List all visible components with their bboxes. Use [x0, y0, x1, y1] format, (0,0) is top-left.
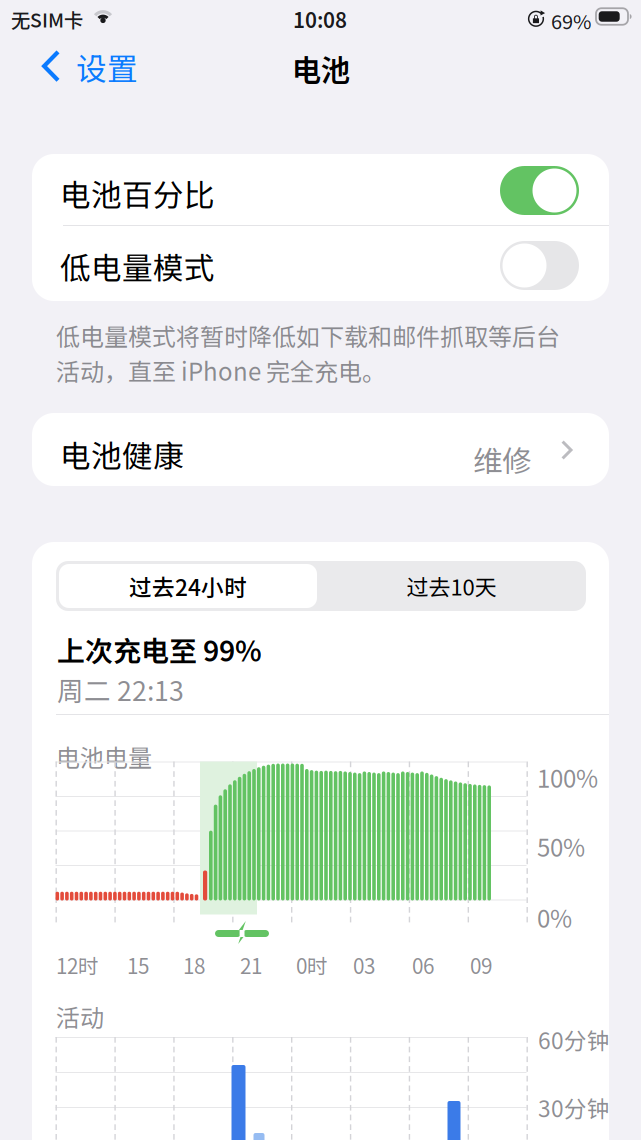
- staticText: 09: [470, 950, 492, 980]
- staticText: 03: [353, 950, 375, 980]
- staticText: 电池: [292, 47, 350, 89]
- staticText: 69%: [551, 6, 591, 35]
- button[interactable]: 电池健康: [32, 413, 609, 486]
- staticText: 过去24小时: [129, 570, 247, 602]
- staticText: 过去10天: [406, 570, 496, 602]
- staticText: 100%: [537, 760, 598, 795]
- staticText: 活动，直至 iPhone 完全充电。: [56, 353, 386, 388]
- button[interactable]: 过去24小时: [59, 564, 317, 608]
- staticText: 50%: [537, 829, 585, 864]
- staticText: 60分钟: [538, 1023, 610, 1056]
- staticText: 15: [127, 950, 149, 980]
- staticText: 无SIM卡: [11, 5, 83, 33]
- staticText: 设置: [76, 45, 138, 89]
- button[interactable]: 电池百分比: [32, 154, 609, 225]
- staticText: 上次充电至 99%: [57, 629, 262, 669]
- staticText: 电池电量: [56, 739, 152, 774]
- staticText: 周二 22:13: [57, 670, 184, 709]
- staticText: 低电量模式: [60, 244, 215, 288]
- staticText: 电池百分比: [60, 171, 215, 215]
- staticText: 低电量模式将暂时降低如下载和邮件抓取等后台: [56, 318, 560, 353]
- staticText: 0时: [296, 950, 328, 980]
- staticText: 18: [183, 950, 205, 980]
- button[interactable]: 设置: [21, 47, 125, 87]
- staticText: 维修: [473, 438, 531, 480]
- staticText: 30分钟: [538, 1091, 610, 1124]
- staticText: 电池健康: [60, 432, 184, 476]
- staticText: 活动: [56, 999, 104, 1034]
- staticText: 0%: [537, 900, 572, 935]
- staticText: 21: [240, 950, 262, 980]
- button[interactable]: 过去10天: [320, 564, 583, 608]
- button[interactable]: 低电量模式: [32, 226, 609, 301]
- staticText: 10:08: [293, 4, 347, 34]
- staticText: 06: [412, 950, 434, 980]
- staticText: 12时: [56, 950, 99, 980]
